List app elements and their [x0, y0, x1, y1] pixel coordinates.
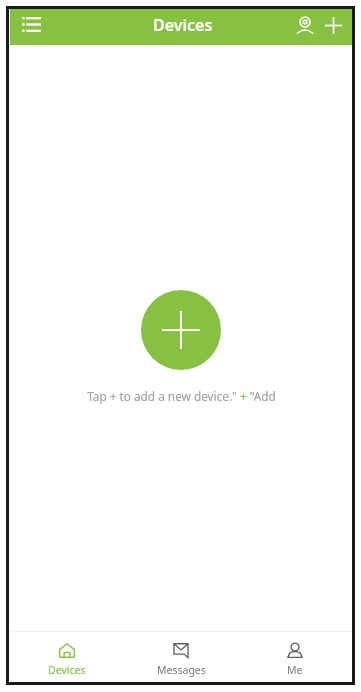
staticText: Devices [48, 663, 86, 677]
button[interactable]: Me [238, 632, 352, 682]
button[interactable]: Devices [10, 632, 124, 682]
button[interactable]: Add device [141, 290, 221, 370]
button[interactable]: Menu [15, 8, 47, 40]
button[interactable]: Messages [124, 632, 238, 682]
button[interactable]: Account [291, 11, 319, 39]
staticText: Tap + to add a new device." + "Add [87, 388, 276, 404]
button[interactable]: Add [319, 11, 347, 39]
staticText: Messages [157, 663, 206, 677]
staticText: Me [287, 663, 303, 677]
staticText: Devices [153, 14, 213, 36]
